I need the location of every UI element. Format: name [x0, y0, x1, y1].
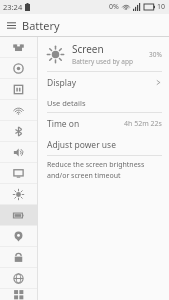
staticText: Screen [72, 42, 104, 56]
staticText: 10 [157, 2, 166, 12]
button[interactable]: Apps [0, 289, 37, 300]
staticText: 0% [109, 2, 119, 12]
button[interactable]: Brightness [0, 184, 37, 204]
staticText: Display [47, 77, 155, 89]
button[interactable]: Language [0, 268, 37, 288]
staticText: Battery [22, 18, 60, 33]
button[interactable]: Battery [0, 205, 37, 225]
staticText: Time on [47, 118, 124, 130]
button[interactable]: Bluetooth [0, 121, 37, 141]
button[interactable]: Wi-Fi [0, 100, 37, 120]
staticText: Use details [47, 98, 86, 108]
button[interactable]: SIM cards [0, 79, 37, 99]
button[interactable]: Screen [38, 37, 169, 71]
button[interactable]: Camera [0, 58, 37, 78]
staticText: 4h 52m 22s [124, 119, 162, 129]
button[interactable]: Display [0, 163, 37, 183]
button[interactable]: Security [0, 247, 37, 267]
button[interactable]: Location [0, 226, 37, 246]
button[interactable]: Adjust power use [38, 134, 169, 155]
button[interactable]: Time on [38, 113, 169, 134]
staticText: Reduce the screen brightness and/or scre… [47, 160, 145, 180]
staticText: 30% [149, 50, 162, 59]
button[interactable]: Open navigation menu [0, 14, 22, 36]
button[interactable]: Themes [0, 37, 37, 57]
staticText: 23:24 [3, 2, 23, 12]
staticText: Adjust power use [47, 139, 162, 151]
staticText: Battery used by app [72, 57, 133, 66]
button[interactable]: Sound [0, 142, 37, 162]
button[interactable]: Display [38, 72, 169, 93]
